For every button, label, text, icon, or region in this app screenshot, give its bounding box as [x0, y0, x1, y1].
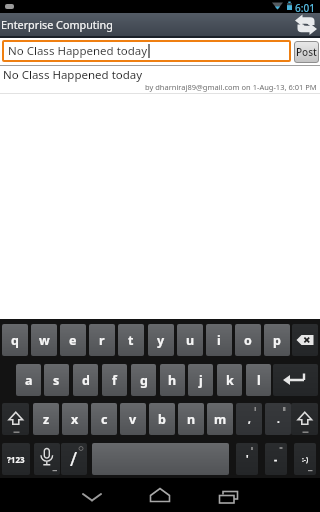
button[interactable]: g — [131, 364, 156, 396]
button[interactable]: c — [91, 403, 117, 435]
button[interactable]: - — [265, 443, 287, 475]
button[interactable]: No Class Happened today — [0, 66, 320, 93]
button[interactable] — [2, 403, 29, 435]
button[interactable]: f — [102, 364, 127, 396]
button[interactable]: n — [178, 403, 204, 435]
staticText: q — [11, 332, 19, 349]
button[interactable]: x — [62, 403, 88, 435]
button[interactable]: s — [44, 364, 69, 396]
button[interactable]: w — [31, 324, 57, 356]
button[interactable]: v — [120, 403, 146, 435]
button[interactable]: m — [207, 403, 233, 435]
button[interactable]: , — [236, 403, 262, 435]
staticText: g — [140, 372, 148, 389]
staticText: s — [53, 372, 60, 389]
button[interactable]: Post — [294, 41, 319, 63]
staticText: / — [70, 446, 78, 472]
staticText: x — [71, 411, 79, 428]
staticText: u — [186, 332, 195, 349]
staticText: No Class Happened today — [8, 43, 148, 59]
button[interactable]: i — [206, 324, 232, 356]
staticText: by dharniraj89@gmail.com on 1-Aug-13, 6:… — [145, 82, 317, 92]
button[interactable]: d — [73, 364, 98, 396]
button[interactable]: ' — [236, 443, 258, 475]
staticText: - — [274, 452, 278, 466]
staticText: 6:01 — [295, 1, 315, 14]
button[interactable]: e — [60, 324, 86, 356]
button[interactable]: :-) — [294, 443, 316, 475]
staticText: ?123 — [7, 454, 25, 465]
button[interactable]: p — [264, 324, 290, 356]
staticText: . — [277, 412, 280, 426]
staticText: w — [39, 332, 50, 349]
button[interactable]: h — [160, 364, 185, 396]
button[interactable] — [212, 478, 244, 512]
button[interactable]: b — [149, 403, 175, 435]
staticText: y — [157, 332, 165, 349]
button[interactable]: u — [177, 324, 203, 356]
button[interactable] — [291, 403, 318, 435]
button[interactable]: z — [33, 403, 59, 435]
staticText: No Class Happened today — [3, 67, 143, 83]
button[interactable] — [92, 443, 229, 475]
button[interactable] — [76, 478, 108, 512]
button[interactable]: t — [118, 324, 144, 356]
staticText: r — [99, 332, 105, 349]
staticText: Enterprise Computing — [1, 17, 113, 32]
staticText: , — [248, 412, 251, 426]
button[interactable]: q — [2, 324, 28, 356]
staticText: ' — [246, 452, 249, 466]
button[interactable]: k — [217, 364, 242, 396]
button[interactable]: j — [188, 364, 213, 396]
button[interactable]: ?123 — [2, 443, 30, 475]
staticText: Post — [296, 45, 317, 59]
button[interactable]: / — [61, 443, 87, 475]
staticText: d — [82, 372, 90, 389]
staticText: f — [112, 372, 117, 389]
staticText: i — [217, 332, 221, 349]
button[interactable] — [292, 324, 318, 356]
staticText: a — [25, 372, 33, 389]
button[interactable] — [34, 443, 60, 475]
staticText: o — [244, 332, 252, 349]
button[interactable]: l — [246, 364, 271, 396]
button[interactable]: o — [235, 324, 261, 356]
button[interactable]: . — [265, 403, 291, 435]
staticText: t — [128, 332, 134, 349]
staticText: e — [69, 332, 77, 349]
staticText: h — [168, 372, 177, 389]
staticText: b — [158, 411, 166, 428]
staticText: p — [273, 332, 281, 349]
button[interactable] — [292, 14, 320, 37]
button[interactable]: No Class Happened today — [2, 40, 291, 62]
staticText: j — [199, 372, 203, 389]
staticText: v — [129, 411, 137, 428]
staticText: l — [257, 372, 261, 389]
staticText: :-) — [302, 455, 309, 464]
staticText: c — [101, 411, 108, 428]
button[interactable]: a — [16, 364, 41, 396]
staticText: k — [226, 372, 234, 389]
staticText: n — [187, 411, 196, 428]
button[interactable] — [273, 364, 318, 396]
button[interactable] — [144, 478, 176, 512]
button[interactable]: y — [148, 324, 174, 356]
button[interactable]: r — [89, 324, 115, 356]
staticText: m — [214, 411, 227, 428]
staticText: z — [43, 411, 50, 428]
